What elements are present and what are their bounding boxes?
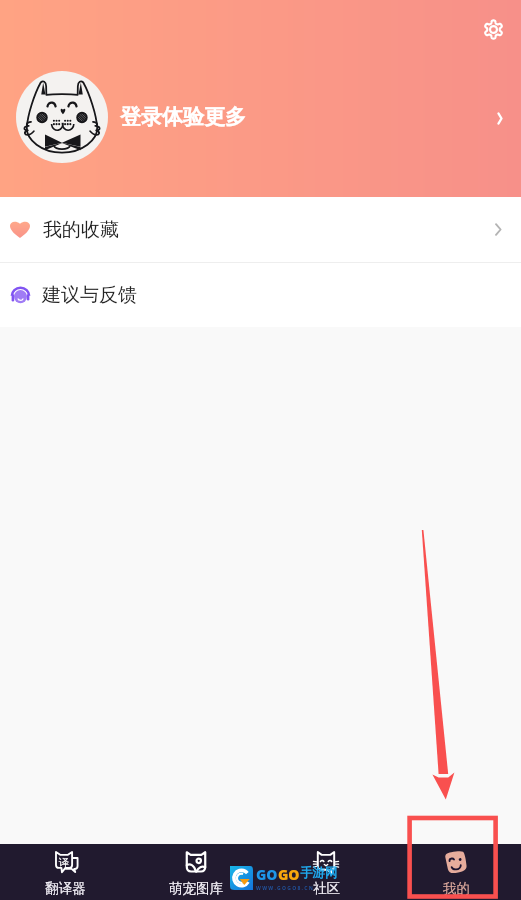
staticText: 建议与反馈 — [42, 283, 137, 307]
button[interactable]: 登录体验更多 — [0, 67, 521, 167]
staticText: 社区 — [313, 880, 340, 897]
staticText: W W W . G O G O 8 . C N — [256, 885, 313, 892]
staticText: 登录体验更多 — [120, 104, 246, 130]
staticText: 翻译器 — [45, 880, 86, 897]
button[interactable]: 萌宠图库 — [131, 844, 261, 900]
staticText: GO — [278, 865, 300, 884]
button[interactable]: 译 — [0, 844, 131, 900]
staticText: 我的收藏 — [43, 218, 119, 242]
staticText: 译 — [59, 856, 69, 869]
staticText: 手游网 — [300, 865, 338, 881]
staticText: 我的 — [443, 880, 470, 897]
button[interactable]: 我的收藏 — [0, 197, 521, 262]
staticText: GO — [256, 865, 278, 884]
button[interactable]: 我的 — [391, 844, 521, 900]
button[interactable]: 建议与反馈 — [0, 263, 521, 327]
button[interactable]: 社区 — [261, 844, 391, 900]
button[interactable]: Settings — [479, 15, 507, 43]
staticText: 萌宠图库 — [169, 880, 223, 897]
